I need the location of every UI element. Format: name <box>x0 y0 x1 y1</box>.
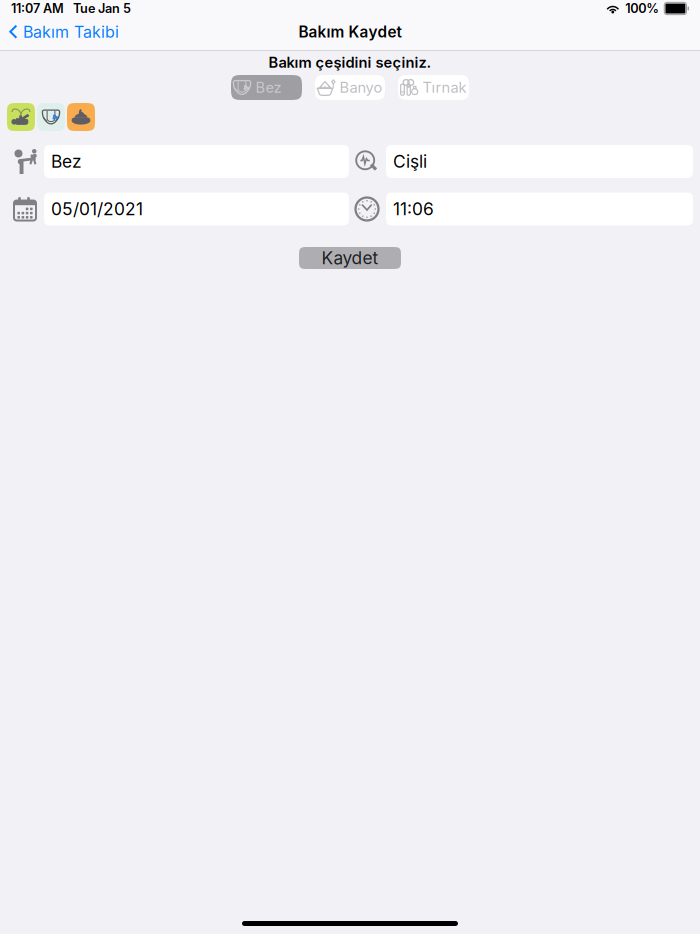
button[interactable]: Bakım Takibi <box>0 18 119 46</box>
staticText: Cişli <box>393 151 427 172</box>
staticText: Bakım Kaydet <box>298 23 401 41</box>
button[interactable]: Tırnak <box>398 75 469 100</box>
button[interactable]: Bez <box>44 145 349 178</box>
staticText: 05/01/2021 <box>51 198 143 219</box>
button[interactable]: Poop <box>67 103 95 131</box>
staticText: Tırnak <box>422 79 466 96</box>
staticText: 11:07 AM <box>11 1 64 16</box>
staticText: Kaydet <box>321 247 378 268</box>
button[interactable]: Cişli <box>386 145 693 178</box>
button[interactable]: 05/01/2021 <box>44 192 349 225</box>
staticText: Banyo <box>339 79 382 96</box>
staticText: 11:06 <box>393 198 434 219</box>
button[interactable]: Banyo <box>315 75 385 100</box>
button[interactable]: Diaper <box>37 103 65 131</box>
button[interactable]: Bez <box>231 75 302 100</box>
button[interactable]: 11:06 <box>386 192 693 225</box>
staticText: 100% <box>625 1 659 16</box>
staticText: Bez <box>255 79 281 96</box>
staticText: Bakım çeşidini seçiniz. <box>268 54 431 71</box>
staticText: Bez <box>51 151 82 172</box>
button[interactable]: Kaydet <box>299 247 401 269</box>
staticText: Tue Jan 5 <box>64 1 131 16</box>
staticText: Bakım Takibi <box>23 22 119 42</box>
button[interactable]: Baby <box>7 103 35 131</box>
